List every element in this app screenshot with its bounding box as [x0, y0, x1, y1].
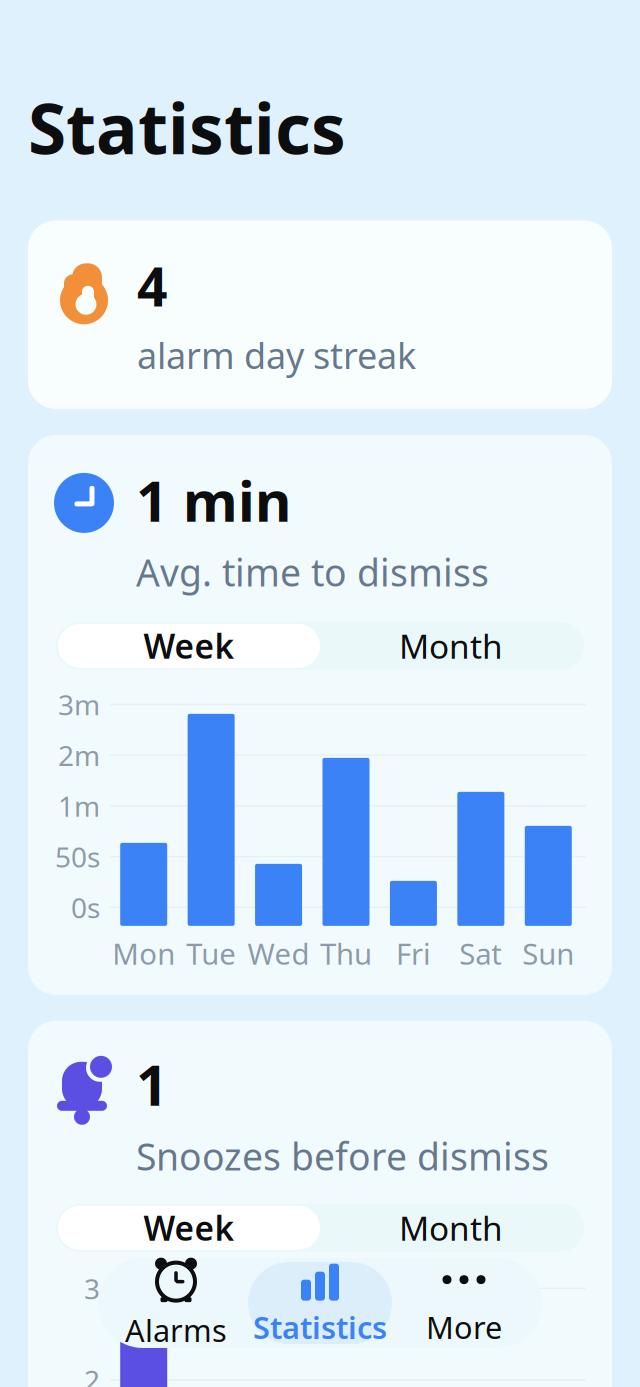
staticText: Thu — [320, 934, 372, 973]
staticText: Month — [399, 624, 503, 668]
staticText: Week — [143, 1206, 234, 1250]
button[interactable]: Week — [58, 624, 320, 668]
staticText: 1 min — [136, 463, 291, 537]
button[interactable]: Week — [58, 1206, 320, 1250]
staticText: alarm day streak — [137, 331, 416, 379]
staticText: Statistics — [28, 81, 346, 173]
staticText: Wed — [248, 934, 310, 973]
staticText: 2 — [84, 1361, 100, 1387]
button[interactable]: Alarms — [104, 1258, 248, 1348]
staticText: 0s — [71, 889, 100, 926]
button[interactable]: Statistics — [248, 1262, 392, 1344]
staticText: Avg. time to dismiss — [136, 547, 489, 597]
button[interactable]: Month — [320, 1206, 582, 1250]
staticText: Sun — [522, 934, 574, 973]
staticText: Tue — [186, 934, 236, 973]
staticText: Statistics — [253, 1307, 387, 1347]
staticText: Week — [143, 624, 234, 668]
staticText: Fri — [396, 934, 431, 973]
staticText: Sat — [459, 934, 502, 973]
staticText: Alarms — [125, 1310, 227, 1350]
button[interactable]: Month — [320, 624, 582, 668]
staticText: 3m — [58, 686, 100, 723]
staticText: More — [426, 1307, 502, 1347]
staticText: 50s — [55, 838, 100, 875]
staticText: Snoozes before dismiss — [136, 1131, 549, 1181]
staticText: Mon — [112, 934, 175, 973]
staticText: 1m — [58, 787, 100, 824]
staticText: 3 — [84, 1270, 100, 1307]
staticText: 2m — [58, 737, 100, 774]
staticText: 4 — [137, 250, 168, 321]
staticText: 1 — [136, 1047, 168, 1121]
button[interactable]: More — [392, 1258, 536, 1348]
staticText: Month — [399, 1206, 503, 1250]
